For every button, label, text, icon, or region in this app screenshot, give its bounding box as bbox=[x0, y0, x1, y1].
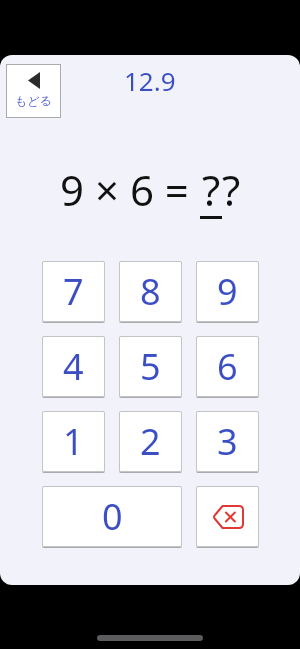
button[interactable]: 4 bbox=[42, 336, 105, 397]
staticText: もどる bbox=[15, 93, 52, 108]
button[interactable]: 6 bbox=[196, 336, 259, 397]
staticText: 9 × 6 = bbox=[60, 161, 200, 218]
button[interactable]: 2 bbox=[119, 411, 182, 472]
staticText: 3 bbox=[217, 417, 238, 466]
staticText: 6 bbox=[217, 342, 238, 391]
button[interactable] bbox=[196, 486, 259, 547]
staticText: 5 bbox=[140, 342, 161, 391]
button[interactable]: 7 bbox=[42, 261, 105, 322]
staticText: 1 bbox=[63, 417, 84, 466]
button[interactable]: 5 bbox=[119, 336, 182, 397]
staticText: 12.9 bbox=[124, 63, 176, 98]
button[interactable]: 1 bbox=[42, 411, 105, 472]
staticText: 8 bbox=[140, 267, 161, 316]
staticText: 9 bbox=[217, 267, 238, 316]
button[interactable]: もどる bbox=[6, 64, 61, 118]
button[interactable]: 8 bbox=[119, 261, 182, 322]
button[interactable]: 3 bbox=[196, 411, 259, 472]
staticText: 7 bbox=[63, 267, 84, 316]
staticText: 4 bbox=[63, 342, 84, 391]
staticText: 2 bbox=[140, 417, 161, 466]
staticText: ? bbox=[202, 161, 221, 218]
staticText: 0 bbox=[102, 492, 123, 541]
button[interactable]: 9 bbox=[196, 261, 259, 322]
staticText: ? bbox=[222, 161, 241, 218]
button[interactable]: 0 bbox=[42, 486, 182, 547]
